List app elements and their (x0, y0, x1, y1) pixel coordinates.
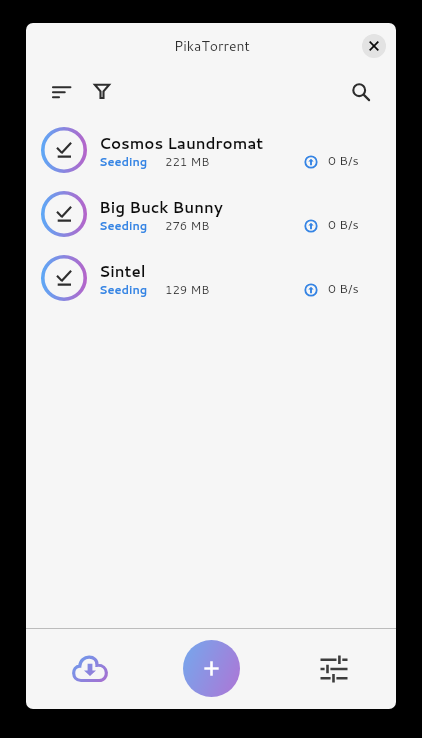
staticText: 276 MB (165, 217, 210, 234)
staticText: 0 B/s (328, 279, 359, 297)
staticText: 129 MB (165, 281, 210, 298)
staticText: 0 B/s (328, 215, 359, 233)
staticText: Seeding (99, 218, 148, 234)
staticText: 221 MB (165, 153, 210, 170)
button[interactable]: Cosmos Laundromat (26, 118, 396, 182)
button[interactable]: Search (345, 76, 377, 108)
staticText: Cosmos Laundromat (99, 132, 264, 153)
staticText: Big Buck Bunny (99, 196, 223, 217)
staticText: PikaTorrent (174, 36, 250, 56)
button[interactable]: Sintel (26, 246, 396, 310)
button[interactable]: Downloads (68, 647, 112, 691)
button[interactable]: Settings (316, 651, 352, 687)
staticText: Sintel (99, 260, 146, 281)
staticText: Seeding (99, 282, 148, 298)
button[interactable]: Big Buck Bunny (26, 182, 396, 246)
button[interactable]: Sort (49, 76, 81, 108)
button[interactable]: Filter (86, 76, 118, 108)
staticText: 0 B/s (328, 151, 359, 169)
staticText: Seeding (99, 154, 148, 170)
button[interactable]: Add torrent (183, 640, 240, 697)
button[interactable]: Close (362, 34, 386, 58)
